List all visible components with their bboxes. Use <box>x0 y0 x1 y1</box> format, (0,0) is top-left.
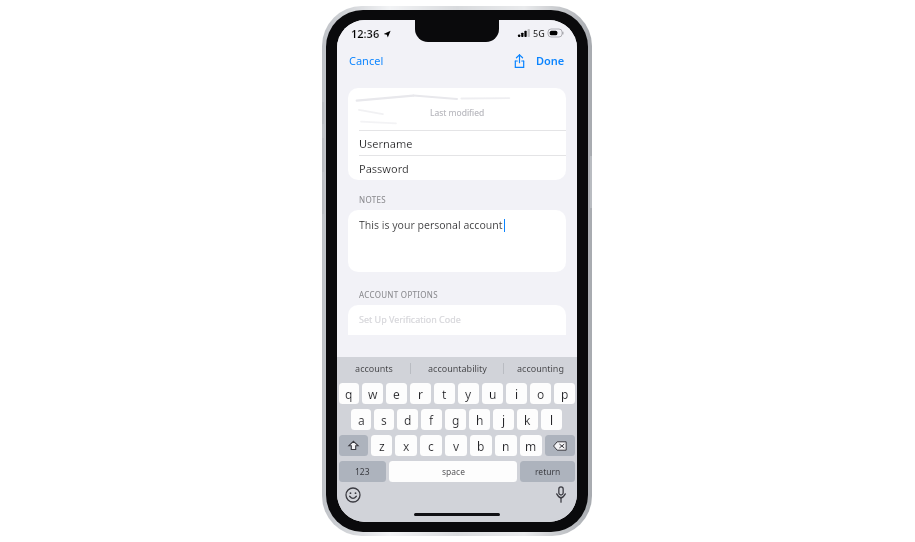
button[interactable]: e <box>386 383 407 404</box>
button[interactable]: t <box>434 383 455 404</box>
button[interactable]: h <box>469 409 490 430</box>
staticText: Done <box>536 53 565 68</box>
button[interactable]: v <box>445 435 467 456</box>
staticText: k <box>524 412 531 428</box>
staticText: accounting <box>517 362 564 374</box>
button[interactable]: This is your personal account <box>348 210 566 272</box>
staticText: o <box>537 386 545 402</box>
staticText: b <box>477 438 485 454</box>
button[interactable]: d <box>397 409 418 430</box>
button[interactable]: Emoji <box>345 487 361 503</box>
button[interactable]: Dictate <box>555 486 567 503</box>
staticText: return <box>535 466 561 478</box>
button[interactable]: Share <box>509 50 530 72</box>
button[interactable]: j <box>493 409 514 430</box>
button[interactable]: g <box>445 409 466 430</box>
staticText: NOTES <box>359 194 386 205</box>
staticText: j <box>502 412 506 428</box>
staticText: space <box>442 466 465 478</box>
button[interactable]: c <box>420 435 442 456</box>
staticText: r <box>418 386 423 402</box>
staticText: f <box>429 412 434 428</box>
button[interactable]: 123 <box>339 461 386 482</box>
staticText: 12:36 <box>351 26 380 41</box>
staticText: t <box>442 386 447 402</box>
staticText: g <box>452 412 460 428</box>
staticText: a <box>358 412 365 428</box>
staticText: Password <box>359 161 409 176</box>
staticText: accounts <box>355 362 393 374</box>
button[interactable]: y <box>458 383 479 404</box>
staticText: n <box>502 438 510 454</box>
staticText: h <box>476 412 484 428</box>
button[interactable]: r <box>410 383 431 404</box>
staticText: l <box>550 412 554 428</box>
button[interactable]: u <box>482 383 503 404</box>
staticText: 5G <box>533 27 545 39</box>
button[interactable]: n <box>495 435 517 456</box>
staticText: Set Up Verification Code <box>359 313 461 325</box>
button[interactable]: m <box>520 435 542 456</box>
button[interactable]: accounting <box>504 357 577 379</box>
button[interactable]: Done <box>530 49 577 72</box>
staticText: Cancel <box>349 53 384 68</box>
staticText: 123 <box>355 466 370 478</box>
button[interactable]: l <box>541 409 562 430</box>
button[interactable]: o <box>530 383 551 404</box>
staticText: p <box>561 386 569 402</box>
button[interactable]: accountability <box>411 357 503 379</box>
button[interactable]: a <box>351 409 371 430</box>
staticText: Username <box>359 136 413 151</box>
staticText: i <box>515 386 519 402</box>
staticText: ACCOUNT OPTIONS <box>359 289 438 300</box>
button[interactable]: s <box>374 409 394 430</box>
button[interactable]: q <box>339 383 359 404</box>
staticText: c <box>428 438 434 454</box>
button[interactable]: x <box>395 435 417 456</box>
staticText: e <box>393 386 400 402</box>
staticText: d <box>404 412 412 428</box>
staticText: v <box>453 438 460 454</box>
staticText: w <box>368 386 378 402</box>
staticText: s <box>381 412 387 428</box>
button[interactable]: space <box>389 461 517 482</box>
button[interactable]: Cancel <box>337 49 396 72</box>
staticText: accountability <box>428 362 487 374</box>
button[interactable]: z <box>371 435 392 456</box>
button[interactable]: return <box>520 461 575 482</box>
button[interactable]: f <box>421 409 442 430</box>
button[interactable]: accounts <box>337 357 410 379</box>
staticText: m <box>525 438 537 454</box>
button[interactable]: w <box>362 383 383 404</box>
button[interactable]: b <box>470 435 492 456</box>
staticText: u <box>489 386 497 402</box>
button[interactable]: k <box>517 409 538 430</box>
button[interactable]: Username <box>348 131 566 155</box>
staticText: x <box>403 438 410 454</box>
button[interactable]: p <box>554 383 575 404</box>
staticText: z <box>379 438 385 454</box>
staticText: q <box>345 386 353 402</box>
button[interactable]: Shift <box>339 435 368 456</box>
staticText: Last modified <box>430 107 485 119</box>
button[interactable]: Password <box>348 156 566 180</box>
staticText: This is your personal account <box>359 218 503 232</box>
staticText: y <box>465 386 472 402</box>
button[interactable]: i <box>506 383 527 404</box>
button[interactable]: Delete <box>545 435 575 456</box>
